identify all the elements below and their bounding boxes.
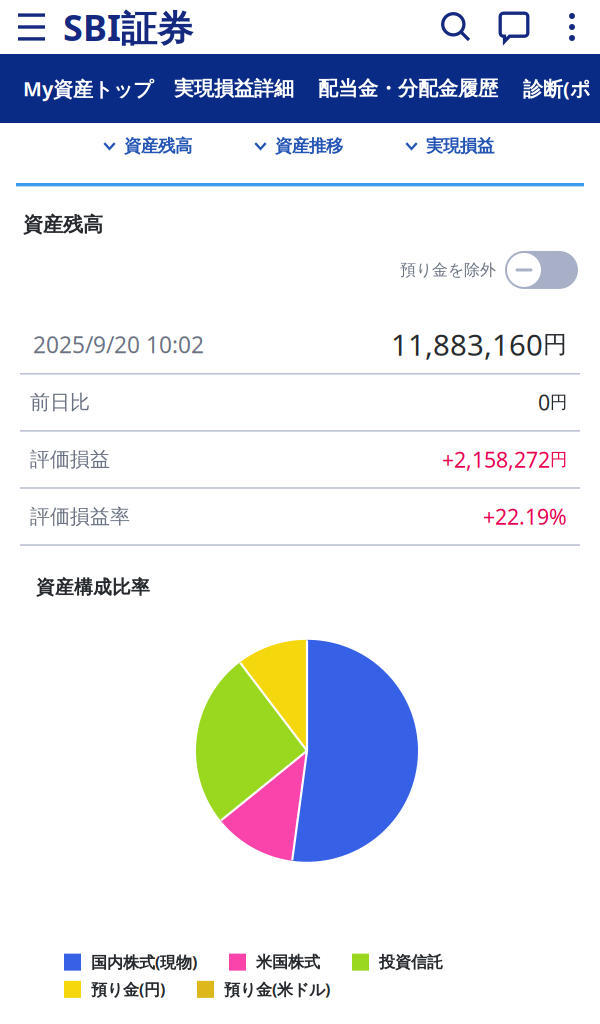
staticText: 国内株式(現物): [91, 951, 197, 973]
staticText: +2,158,272: [442, 445, 550, 474]
staticText: 資産推移: [275, 135, 343, 157]
staticText: 資産残高: [23, 212, 103, 237]
staticText: 前日比: [30, 390, 90, 415]
staticText: 資産残高: [124, 135, 192, 157]
staticText: 実現損益詳細: [174, 76, 294, 101]
button[interactable]: 実現損益: [405, 123, 494, 183]
staticText: 預り金(米ドル): [224, 979, 330, 1000]
button[interactable]: その他: [544, 0, 600, 54]
staticText: 預り金(円): [91, 979, 165, 1000]
button[interactable]: 資産残高: [103, 123, 192, 183]
staticText: 11,883,160: [391, 325, 543, 364]
button[interactable]: メッセージ: [484, 0, 544, 54]
staticText: 評価損益: [30, 447, 110, 472]
button[interactable]: 資産推移: [254, 123, 343, 183]
staticText: 米国株式: [256, 952, 320, 972]
staticText: 2025/9/20 10:02: [33, 329, 204, 359]
staticText: 円: [550, 449, 567, 470]
button[interactable]: 診断(ポ: [523, 54, 590, 123]
staticText: 資産構成比率: [36, 576, 150, 599]
staticText: 円: [550, 392, 567, 413]
staticText: My資産トップ: [23, 75, 153, 102]
button[interactable]: My資産トップ: [0, 54, 174, 123]
staticText: 円: [543, 330, 567, 359]
staticText: 評価損益率: [30, 504, 130, 529]
button[interactable]: 検索: [428, 0, 484, 54]
staticText: 0: [538, 388, 550, 416]
button[interactable]: 配当金・分配金履歴: [318, 54, 523, 123]
staticText: 預り金を除外: [400, 260, 496, 280]
staticText: SBI証券: [63, 3, 193, 51]
staticText: 投資信託: [379, 952, 443, 972]
staticText: 実現損益: [426, 135, 494, 157]
button[interactable]: メニュー: [0, 0, 63, 54]
staticText: 診断(ポ: [523, 75, 590, 102]
button[interactable]: 実現損益詳細: [174, 54, 318, 123]
staticText: +22.19%: [483, 502, 567, 531]
staticText: 配当金・分配金履歴: [318, 76, 498, 101]
button[interactable]: 預り金を除外: [505, 251, 578, 289]
